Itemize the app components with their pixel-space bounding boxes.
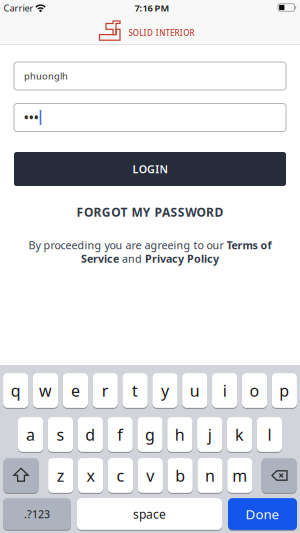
staticText: space — [133, 506, 166, 522]
button[interactable]: x — [78, 458, 103, 493]
button[interactable]: Delete — [261, 458, 296, 493]
staticText: b — [175, 465, 185, 486]
staticText: c — [116, 465, 124, 486]
staticText: f — [117, 424, 123, 445]
button[interactable]: n — [197, 458, 223, 493]
staticText: i — [223, 380, 227, 401]
button[interactable]: .?123 — [3, 498, 71, 530]
button[interactable]: v — [138, 458, 163, 493]
staticText: m — [232, 465, 247, 486]
staticText: FORGOT MY PASSWORD — [77, 204, 223, 220]
staticText: SOLID INTERIOR — [128, 28, 195, 38]
staticText: w — [39, 380, 52, 401]
staticText: ••• — [24, 109, 39, 125]
staticText: p — [279, 380, 289, 401]
staticText: Done — [245, 505, 279, 523]
staticText: o — [249, 380, 259, 401]
staticText: a — [26, 424, 35, 445]
button[interactable]: b — [168, 458, 193, 493]
button[interactable]: FORGOT MY PASSWORD — [77, 204, 223, 220]
button[interactable]: y — [152, 373, 177, 408]
button[interactable]: q — [3, 373, 28, 408]
staticText: j — [208, 424, 212, 445]
textField[interactable]: phuonglh — [24, 70, 286, 82]
button[interactable]: Shift — [3, 458, 38, 493]
button[interactable]: a — [18, 417, 43, 452]
staticText: LOGIN — [132, 162, 168, 176]
button[interactable]: Done — [228, 498, 297, 530]
button[interactable]: LOGIN — [14, 152, 286, 186]
staticText: n — [205, 465, 215, 486]
button[interactable]: h — [167, 417, 192, 452]
button[interactable]: f — [108, 417, 133, 452]
staticText: .?123 — [24, 507, 50, 521]
staticText: x — [87, 465, 95, 486]
staticText: z — [57, 465, 65, 486]
button[interactable]: d — [78, 417, 103, 452]
staticText: r — [102, 380, 109, 401]
button[interactable]: k — [227, 417, 252, 452]
staticText: Service and Privacy Policy — [81, 251, 219, 266]
button[interactable]: u — [182, 373, 207, 408]
button[interactable]: g — [137, 417, 163, 452]
button[interactable]: e — [63, 373, 88, 408]
button[interactable]: p — [272, 373, 297, 408]
button[interactable]: s — [48, 417, 73, 452]
button[interactable]: r — [93, 373, 118, 408]
secureTextField[interactable]: aaa — [24, 109, 286, 125]
button[interactable]: w — [33, 373, 58, 408]
staticText: l — [267, 424, 271, 445]
button[interactable]: t — [122, 373, 148, 408]
staticText: e — [71, 380, 80, 401]
staticText: k — [235, 424, 244, 445]
button[interactable]: c — [108, 458, 133, 493]
staticText: q — [11, 380, 21, 401]
staticText: v — [146, 465, 154, 486]
button[interactable]: i — [212, 373, 237, 408]
staticText: By proceeding you are agreeing to our Te… — [28, 238, 271, 252]
staticText: 7:16 PM — [134, 2, 169, 14]
button[interactable]: j — [197, 417, 222, 452]
button[interactable]: z — [48, 458, 73, 493]
staticText: g — [145, 424, 155, 445]
staticText: t — [132, 380, 138, 401]
staticText: phuonglh — [24, 70, 68, 82]
staticText: d — [85, 424, 95, 445]
staticText: u — [190, 380, 200, 401]
button[interactable]: o — [242, 373, 267, 408]
staticText: s — [56, 424, 64, 445]
staticText: h — [175, 424, 185, 445]
button[interactable]: m — [227, 458, 252, 493]
staticText: Carrier — [3, 2, 33, 14]
button[interactable]: l — [257, 417, 282, 452]
staticText: y — [161, 380, 169, 401]
button[interactable]: space — [77, 498, 222, 530]
